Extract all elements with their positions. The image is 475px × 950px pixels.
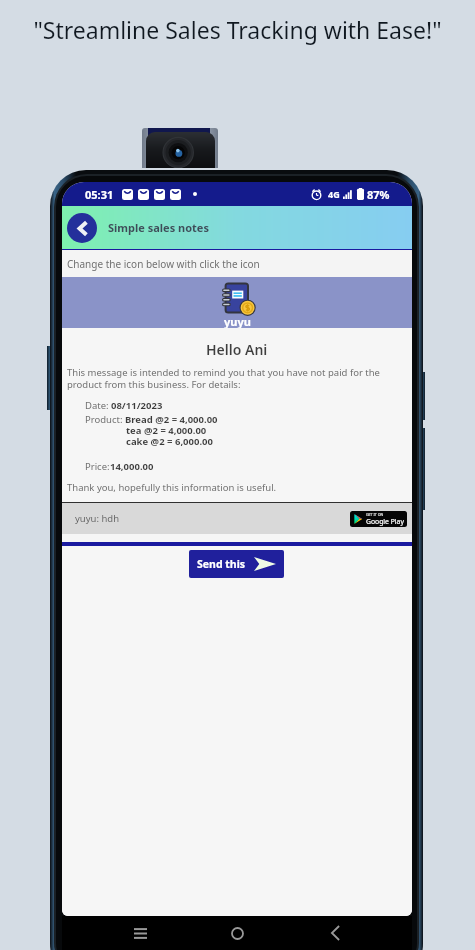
staticText: 14,000.00 [110,460,154,473]
staticText: This message is intended to remind you t… [67,366,412,390]
button[interactable]: Back [315,916,355,950]
button[interactable]: Get it on Google Play [350,511,407,527]
staticText: 87% [367,187,390,202]
button[interactable]: Home [217,916,257,950]
staticText: Simple sales notes [108,220,209,235]
button[interactable]: Change the icon below with click the ico… [62,250,412,277]
staticText: Product: [85,413,123,426]
staticText: Price: [85,460,110,473]
staticText: Bread @2 = 4,000.00 [125,413,218,426]
staticText: Google Play [366,517,404,526]
staticText: Date: [85,399,109,412]
button[interactable]: Send this [189,550,284,578]
staticText: Change the icon below with click the ico… [67,257,260,271]
button[interactable]: Recents [120,916,160,950]
staticText: yuyu [224,314,251,329]
staticText: Hello Ani [206,340,268,359]
staticText: "Streamline Sales Tracking with Ease!" [33,14,442,45]
staticText: 4G [328,188,340,200]
staticText: 05:31 [85,187,114,202]
button[interactable]: Change app icon [223,283,255,316]
staticText: GET IT ON [366,512,384,517]
button[interactable]: Back [67,213,97,243]
staticText: Send this [197,557,246,571]
staticText: Thank you, hopefully this information is… [67,481,277,494]
staticText: yuyu: hdh [75,512,120,525]
staticText: 08/11/2023 [111,399,163,412]
button[interactable]: yuyu: hdh [62,503,412,534]
staticText: cake @2 = 6,000.00 [126,435,213,448]
staticText: tea @2 = 4,000.00 [126,424,207,437]
